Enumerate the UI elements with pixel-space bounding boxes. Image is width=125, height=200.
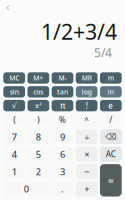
button[interactable]: . — [52, 181, 73, 196]
staticText: M- — [58, 74, 66, 82]
button[interactable]: ) — [27, 114, 49, 126]
button[interactable]: 3 — [52, 164, 73, 179]
button[interactable]: 1 — [3, 164, 25, 179]
staticText: . — [61, 183, 64, 195]
button[interactable]: − — [76, 164, 98, 179]
button[interactable]: M+ — [27, 72, 49, 84]
staticText: = — [108, 173, 114, 187]
button[interactable]: sin — [3, 86, 25, 97]
staticText: e — [108, 100, 113, 111]
staticText: × — [84, 148, 89, 160]
staticText: 5/4 — [94, 44, 112, 60]
staticText: log — [82, 87, 92, 96]
button[interactable]: × — [76, 147, 98, 162]
staticText: ⌫ — [105, 132, 116, 141]
button[interactable]: e — [100, 100, 122, 111]
button[interactable]: / — [100, 114, 122, 126]
staticText: 5 — [36, 148, 41, 160]
staticText: tan — [57, 87, 68, 96]
button[interactable]: MR — [76, 72, 98, 84]
staticText: m — [108, 74, 114, 82]
staticText: − — [84, 165, 89, 178]
staticText: 7 — [12, 131, 17, 143]
staticText: MR — [82, 74, 92, 82]
button[interactable]: x² — [27, 100, 49, 111]
button[interactable]: π — [52, 100, 73, 111]
staticText: x² — [35, 101, 41, 110]
staticText: M+ — [33, 74, 43, 82]
button[interactable]: log — [76, 86, 98, 97]
button[interactable]: ln — [100, 86, 122, 97]
staticText: 9 — [60, 131, 65, 143]
staticText: ! — [86, 100, 88, 111]
button[interactable]: + — [76, 181, 98, 196]
staticText: cos — [33, 87, 43, 96]
button[interactable]: ( — [3, 114, 25, 126]
button[interactable]: ^ — [76, 114, 98, 126]
staticText: ) — [37, 115, 39, 125]
staticText: + — [84, 183, 89, 195]
button[interactable]: Back — [0, 0, 16, 13]
staticText: AC — [106, 149, 116, 159]
staticText: √ — [12, 101, 17, 110]
staticText: ‹ — [6, 0, 10, 14]
button[interactable]: 6 — [52, 147, 73, 162]
staticText: ^ — [84, 115, 89, 125]
button[interactable]: M- — [52, 72, 73, 84]
button[interactable]: √ — [3, 100, 25, 111]
button[interactable]: % — [52, 114, 73, 126]
button[interactable]: 0 — [3, 181, 49, 196]
button[interactable]: 5 — [27, 147, 49, 162]
button[interactable]: AC — [100, 147, 122, 162]
staticText: 6 — [60, 148, 65, 160]
button[interactable]: 7 — [3, 129, 25, 144]
staticText: 8 — [36, 131, 41, 143]
button[interactable]: 4 — [3, 147, 25, 162]
button[interactable]: m — [100, 72, 122, 84]
staticText: ÷ — [84, 131, 89, 143]
button[interactable]: ÷ — [76, 129, 98, 144]
staticText: π — [60, 100, 65, 111]
button[interactable]: 2 — [27, 164, 49, 179]
staticText: 1 — [12, 165, 17, 178]
staticText: / — [109, 115, 112, 125]
button[interactable]: MC — [3, 72, 25, 84]
button[interactable]: 9 — [52, 129, 73, 144]
staticText: 1/2+3/4 — [41, 17, 117, 46]
staticText: 4 — [12, 148, 17, 160]
staticText: MC — [9, 74, 19, 82]
staticText: ln — [108, 87, 114, 96]
staticText: % — [59, 115, 66, 125]
staticText: 2 — [36, 165, 41, 178]
button[interactable]: 8 — [27, 129, 49, 144]
button[interactable]: ! — [76, 100, 98, 111]
button[interactable]: tan — [52, 86, 73, 97]
staticText: 3 — [60, 165, 65, 178]
staticText: ( — [13, 115, 15, 125]
staticText: sin — [10, 87, 19, 96]
staticText: 0 — [24, 183, 29, 195]
button[interactable]: = — [100, 164, 122, 196]
button[interactable]: cos — [27, 86, 49, 97]
button[interactable]: ⌫ — [100, 129, 122, 144]
